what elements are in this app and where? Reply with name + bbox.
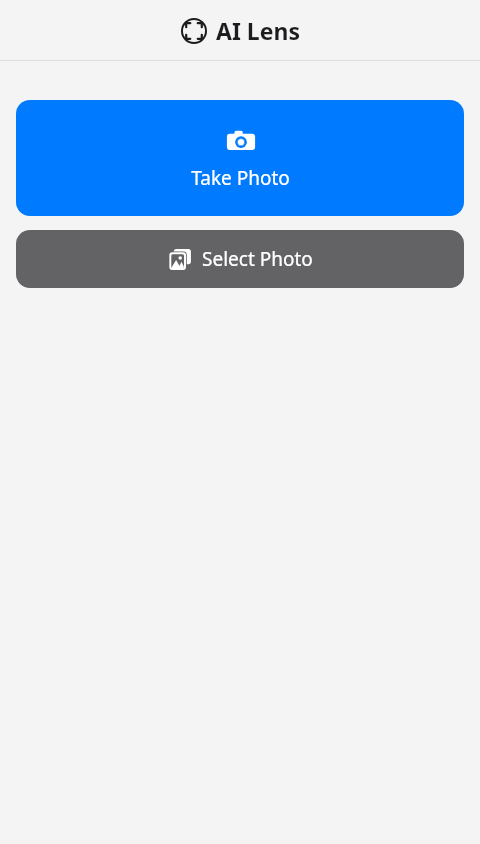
button[interactable]: Select Photo	[16, 230, 464, 288]
staticText: AI Lens	[216, 15, 300, 46]
staticText: Select Photo	[202, 246, 313, 272]
button[interactable]: Take Photo	[16, 100, 464, 216]
other: AI Lens	[181, 18, 207, 44]
staticText: Take Photo	[191, 165, 290, 191]
